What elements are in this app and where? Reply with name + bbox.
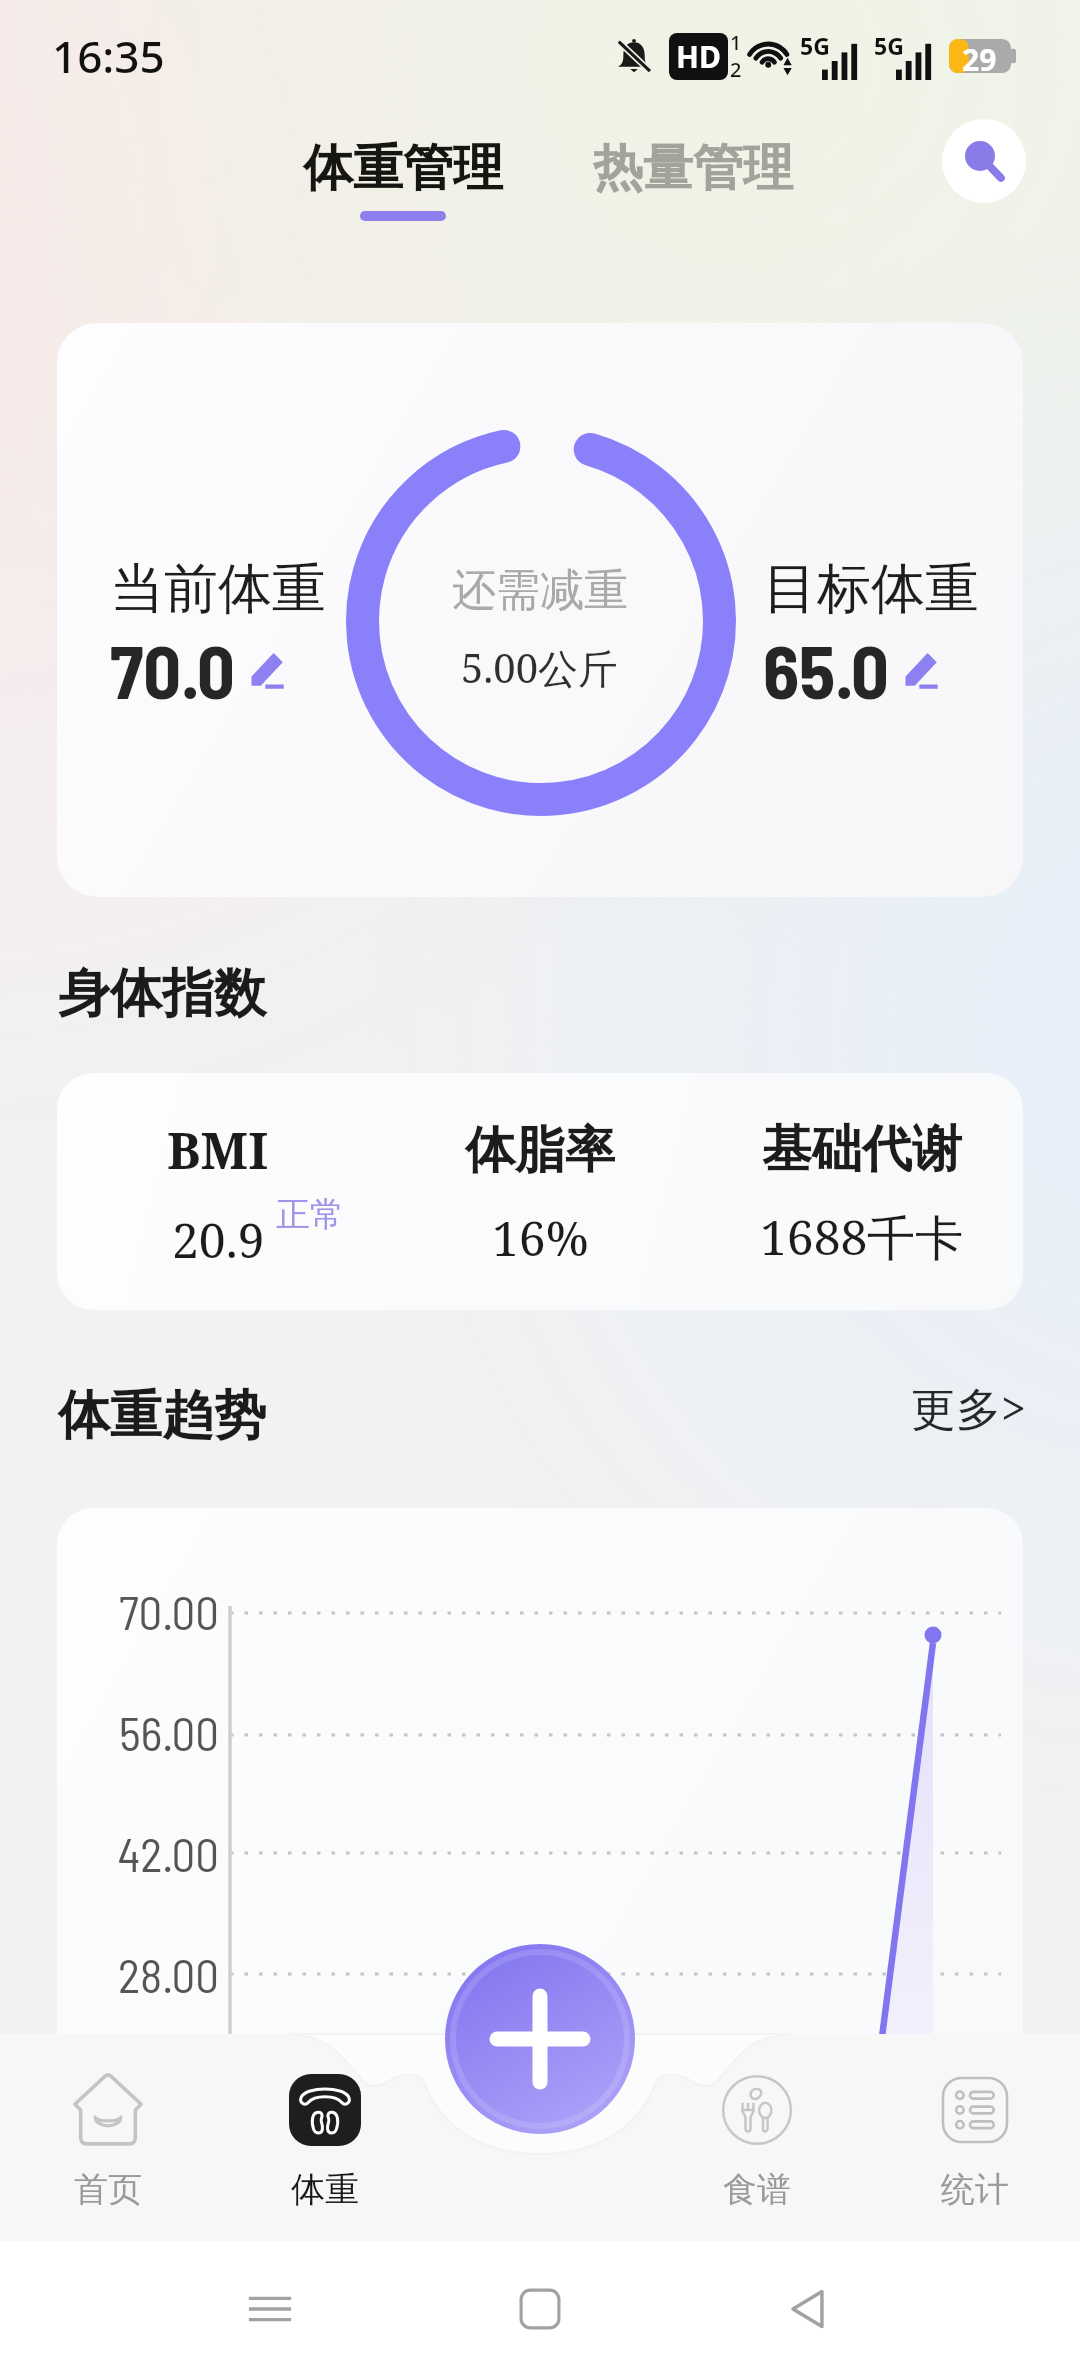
staticText: 热量管理 <box>593 137 793 200</box>
staticText: 5.00公斤 <box>461 640 619 695</box>
staticText: 16:35 <box>52 26 165 86</box>
button[interactable]: Back <box>770 2269 850 2349</box>
staticText: 基础代谢 <box>762 1118 962 1181</box>
button[interactable]: Search <box>942 119 1026 203</box>
staticText: 65.0 <box>763 625 889 714</box>
button[interactable]: Recents <box>230 2269 310 2349</box>
staticText: 28.00 <box>113 1946 219 2002</box>
staticText: BMI <box>167 1116 269 1184</box>
staticText: 统计 <box>941 2168 1009 2211</box>
button[interactable]: 食谱 <box>687 2070 827 2215</box>
staticText: 体重 <box>291 2168 359 2211</box>
staticText: 当前体重 <box>110 555 326 623</box>
staticText: 56.00 <box>113 1704 219 1760</box>
button[interactable]: Edit weight <box>895 642 951 698</box>
staticText: 70.0 <box>110 625 235 714</box>
staticText: 更多> <box>911 1377 1027 1438</box>
staticText: 1688千卡 <box>760 1204 964 1270</box>
staticText: 首页 <box>74 2168 142 2211</box>
button[interactable]: 热量管理 <box>579 131 807 206</box>
staticText: 2 <box>730 56 742 83</box>
button[interactable]: 统计 <box>905 2070 1045 2215</box>
button[interactable]: Home <box>500 2269 580 2349</box>
staticText: 16% <box>492 1205 589 1270</box>
button[interactable]: 更多> <box>898 1381 1022 1450</box>
button[interactable]: 体重管理 <box>289 131 517 227</box>
staticText: HD <box>676 36 721 77</box>
button[interactable]: 首页 <box>38 2070 178 2215</box>
staticText: 体重趋势 <box>58 1383 266 1449</box>
staticText: 体脂率 <box>465 1119 615 1182</box>
staticText: 42.00 <box>113 1825 219 1881</box>
staticText: 5G <box>874 30 904 61</box>
staticText: 体重管理 <box>303 137 503 200</box>
staticText: 正常 <box>276 1193 344 1236</box>
staticText: 食谱 <box>723 2168 791 2211</box>
staticText: 1 <box>730 29 742 56</box>
button[interactable]: 体重 <box>255 2070 395 2215</box>
staticText: 70.00 <box>113 1583 219 1639</box>
staticText: 身体指数 <box>58 961 266 1027</box>
staticText: 5G <box>800 30 830 61</box>
staticText: 还需减重 <box>452 563 628 618</box>
staticText: 目标体重 <box>763 555 979 623</box>
staticText: 20.9 <box>172 1207 265 1272</box>
staticText: 29 <box>962 39 997 73</box>
button[interactable]: Add record <box>445 1944 635 2134</box>
button[interactable]: Edit weight <box>241 642 297 698</box>
